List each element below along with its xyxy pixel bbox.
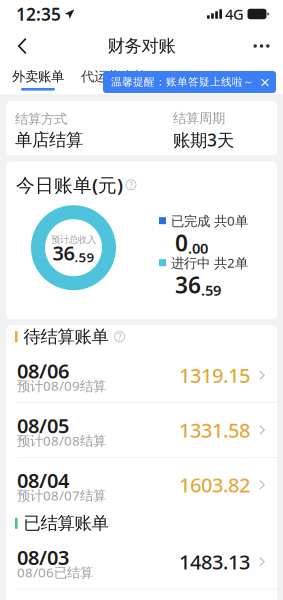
staticText: 单店结算 (15, 129, 83, 150)
staticText: 进行中 共2单 (171, 254, 248, 271)
staticText: 账期3天 (173, 128, 234, 151)
button[interactable]: 08/04 (6, 458, 277, 512)
staticText: 已结算账单 (24, 513, 109, 534)
staticText: 财务对账 (107, 35, 175, 57)
button[interactable]: Back (0, 28, 42, 64)
staticText: 1603.82 (179, 471, 250, 498)
staticText: 0 (175, 228, 188, 258)
staticText: .59 (201, 280, 221, 300)
staticText: 结算方式 (15, 111, 67, 127)
staticText: 外卖账单 (12, 68, 64, 85)
staticText: 1331.58 (179, 417, 250, 443)
staticText: 1319.15 (179, 362, 250, 388)
staticText: 08/05 (17, 412, 69, 439)
staticText: .00 (188, 238, 208, 258)
button[interactable]: More (240, 28, 283, 64)
staticText: 08/04 (17, 467, 69, 494)
button[interactable]: 08/03 (6, 535, 277, 589)
button[interactable]: 外卖账单 (0, 65, 76, 91)
staticText: 结算周期 (173, 110, 225, 126)
button[interactable]: 温馨提醒 (103, 71, 276, 93)
staticText: 1483.13 (179, 548, 250, 575)
staticText: .59 (74, 248, 94, 266)
staticText: ? (129, 179, 133, 191)
staticText: 预计08/07结算 (17, 486, 106, 504)
staticText: 预计总收入 (51, 234, 96, 245)
button[interactable]: 08/05 (6, 403, 277, 457)
staticText: 12:35 (16, 2, 61, 25)
staticText: 已完成 共0单 (171, 212, 248, 229)
staticText: 代运营账单 (81, 68, 146, 85)
staticText: 08/06已结算 (17, 563, 93, 581)
button[interactable]: 代运营账单 (76, 65, 151, 91)
staticText: ? (118, 330, 122, 343)
staticText: 36 (175, 270, 201, 300)
staticText: 预计08/08结算 (17, 432, 106, 449)
staticText: 08/03 (17, 544, 69, 571)
staticText: 08/06 (17, 357, 69, 384)
staticText: 36 (52, 239, 74, 266)
staticText: 今日账单(元) (16, 172, 123, 197)
staticText: 待结算账单 (24, 326, 109, 347)
button[interactable]: 08/06 (6, 348, 277, 402)
staticText: 4G (225, 4, 244, 24)
staticText: 温馨提醒：账单答疑上线啦～ (111, 75, 254, 88)
staticText: 预计08/09结算 (17, 377, 106, 394)
